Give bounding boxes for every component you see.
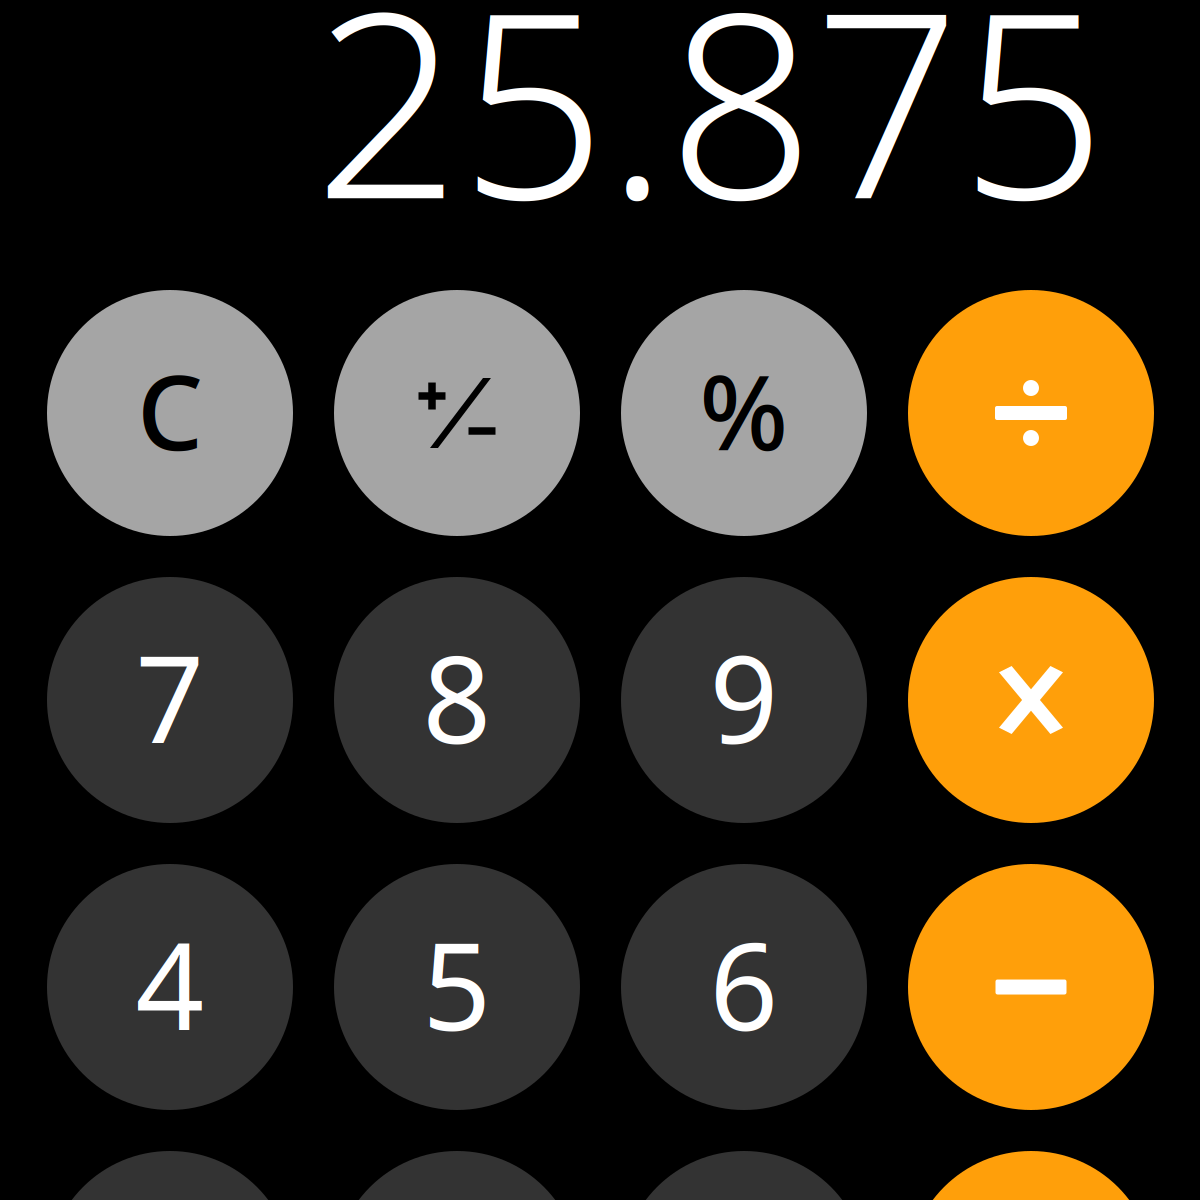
staticText: C	[137, 341, 203, 479]
staticText: 4	[135, 904, 204, 1064]
button[interactable]: 3	[621, 1151, 867, 1200]
button[interactable]: 5	[334, 864, 580, 1110]
button[interactable]: Divide	[908, 290, 1154, 536]
staticText: 5	[422, 904, 491, 1064]
staticText: 8	[422, 617, 491, 777]
staticText: 9	[709, 617, 778, 777]
staticText: 25.875	[314, 0, 1106, 269]
button[interactable]: Multiply	[908, 577, 1154, 823]
button[interactable]: 8	[334, 577, 580, 823]
button[interactable]: 2	[334, 1151, 580, 1200]
button[interactable]: C	[47, 290, 293, 536]
button[interactable]: 1	[47, 1151, 293, 1200]
button[interactable]: 4	[47, 864, 293, 1110]
staticText: %	[699, 341, 788, 479]
staticText: 6	[709, 904, 778, 1064]
button[interactable]: 7	[47, 577, 293, 823]
staticText: 7	[135, 617, 204, 777]
button[interactable]: Minus	[908, 864, 1154, 1110]
button[interactable]: %	[621, 290, 867, 536]
button[interactable]: Plus	[908, 1151, 1154, 1200]
button[interactable]: Plus minus	[334, 290, 580, 536]
button[interactable]: 6	[621, 864, 867, 1110]
button[interactable]: 9	[621, 577, 867, 823]
